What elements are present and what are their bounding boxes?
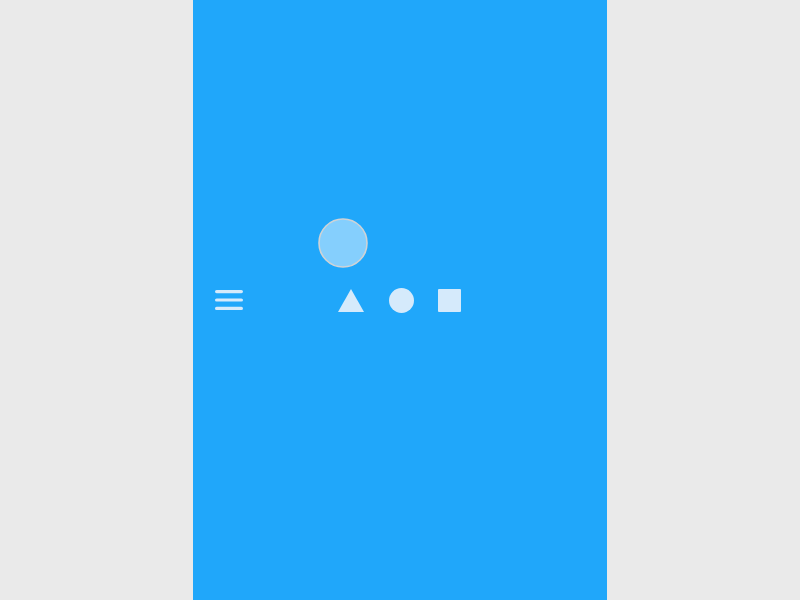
- button[interactable]: Loading list item 2: [209, 160, 593, 244]
- button[interactable]: Open navigation menu: [207, 278, 251, 322]
- button[interactable]: Triangle shape: [331, 280, 371, 320]
- button[interactable]: Square shape: [429, 280, 469, 320]
- button[interactable]: Loading list item 3: [209, 255, 593, 339]
- button[interactable]: Circle shape: [381, 280, 421, 320]
